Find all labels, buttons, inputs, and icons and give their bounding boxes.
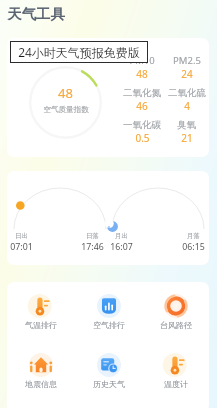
staticText: 气温排行 bbox=[25, 320, 57, 330]
staticText: PM2.5 bbox=[173, 54, 201, 67]
staticText: 24 bbox=[181, 67, 193, 81]
staticText: 空气质量指数 bbox=[43, 105, 89, 115]
button[interactable]: 24小时天气预报免费版 bbox=[11, 42, 147, 62]
staticText: 日落 bbox=[86, 232, 99, 240]
staticText: 46 bbox=[136, 99, 148, 113]
staticText: 4 bbox=[184, 99, 190, 113]
button[interactable]: 地震信息 bbox=[7, 352, 75, 389]
staticText: 一氧化碳 bbox=[123, 119, 161, 131]
button[interactable]: 台风路径 bbox=[142, 293, 209, 330]
staticText: 地震信息 bbox=[25, 379, 57, 389]
staticText: 天气工具 bbox=[7, 5, 65, 23]
staticText: 历史天气 bbox=[93, 379, 125, 389]
staticText: 48 bbox=[58, 84, 73, 102]
staticText: 48 bbox=[136, 67, 148, 81]
staticText: 0.5 bbox=[135, 131, 150, 145]
staticText: 臭氧 bbox=[177, 119, 196, 131]
staticText: 月落 bbox=[187, 232, 200, 240]
staticText: 二氧化氮 bbox=[123, 87, 161, 99]
staticText: PM10 bbox=[129, 54, 155, 67]
staticText: 24小时天气预报免费版 bbox=[18, 44, 140, 60]
button[interactable]: 历史天气 bbox=[75, 352, 142, 389]
staticText: 21 bbox=[181, 131, 193, 145]
staticText: 台风路径 bbox=[160, 320, 192, 330]
staticText: 二氧化硫 bbox=[168, 87, 206, 99]
staticText: 07:01 bbox=[10, 241, 33, 253]
button[interactable]: 气温排行 bbox=[7, 293, 75, 330]
staticText: 17:46 bbox=[81, 241, 104, 253]
button[interactable]: 温度计 bbox=[142, 352, 209, 389]
staticText: 16:07 bbox=[110, 241, 133, 253]
button[interactable]: 空气排行 bbox=[75, 293, 142, 330]
staticText: 月出 bbox=[115, 232, 128, 240]
staticText: 空气排行 bbox=[93, 320, 125, 330]
staticText: 温度计 bbox=[164, 379, 188, 389]
staticText: 日出 bbox=[15, 232, 28, 240]
staticText: 06:15 bbox=[182, 241, 205, 253]
